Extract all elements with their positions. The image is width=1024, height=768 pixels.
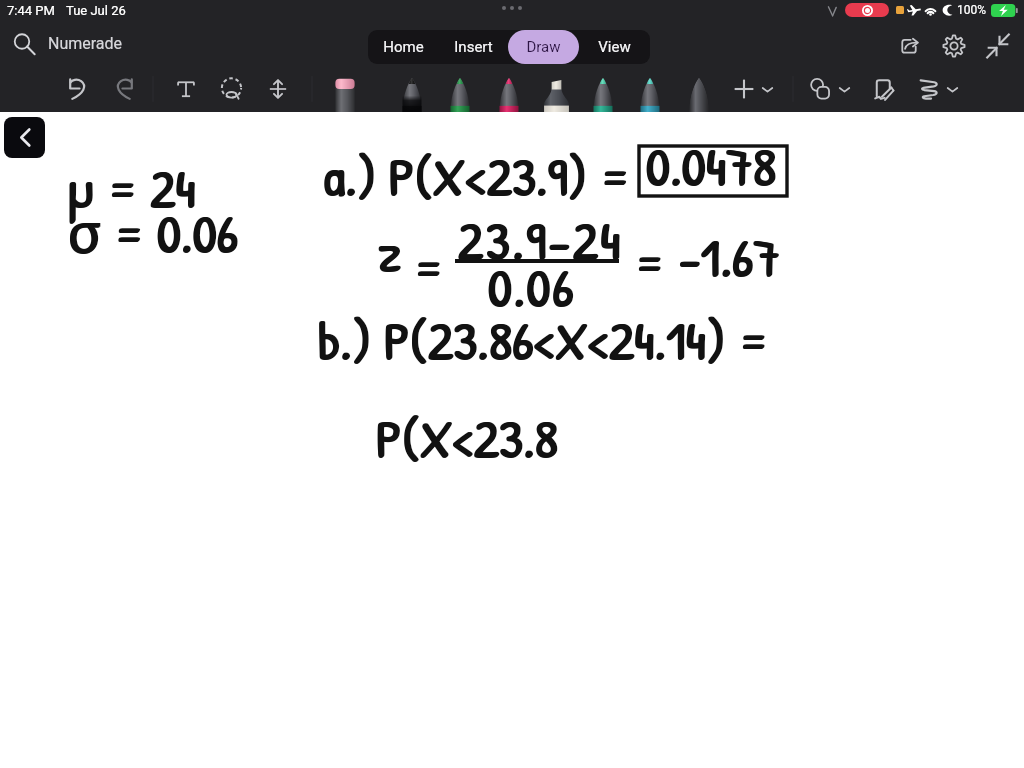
staticText: -1.67 [678, 220, 780, 293]
button[interactable]: Search [11, 31, 36, 56]
staticText: σ = 0.06 [67, 195, 238, 270]
button[interactable]: Tool [686, 78, 712, 112]
button[interactable]: Share [895, 32, 923, 60]
staticText: 23.9-24 [458, 203, 623, 276]
button[interactable]: Tool [447, 78, 473, 112]
staticText: σ = 0.06 [67, 194, 238, 269]
staticText: a.) P(X<23.9) = [324, 139, 631, 212]
staticText: 0.0478 [646, 129, 777, 202]
staticText: View [598, 38, 631, 56]
staticText: 0.0478 [647, 129, 778, 202]
staticText: b.) P(23.86<X<24.14) = [319, 303, 770, 376]
staticText: 23.9-24 [458, 204, 623, 277]
staticText: Tue Jul 26 [66, 3, 126, 18]
button[interactable]: Tool [399, 78, 425, 112]
staticText: σ = 0.06 [68, 194, 239, 269]
staticText: P(X<23.8 [375, 401, 558, 474]
staticText: a.) P(X<23.9) = [323, 139, 630, 212]
staticText: 23.9-24 [457, 204, 622, 277]
staticText: μ = 24 [69, 151, 197, 224]
staticText: 23.9-24 [459, 203, 624, 276]
button[interactable]: Lasso select [219, 76, 245, 102]
staticText: -1.67 [678, 221, 780, 294]
staticText: P(X<23.8 [376, 402, 559, 475]
staticText: 0.0478 [646, 130, 777, 203]
button[interactable]: Insert [438, 30, 508, 64]
staticText: z [378, 216, 402, 289]
staticText: = [414, 230, 445, 303]
staticText: a.) P(X<23.9) = [324, 140, 631, 213]
button[interactable]: Collapse [983, 31, 1013, 61]
staticText: Insert [454, 38, 493, 56]
staticText: 0.0478 [645, 130, 776, 203]
staticText: 7:44 PM [7, 3, 55, 18]
staticText: = [635, 225, 666, 298]
staticText: μ = 24 [68, 152, 196, 225]
staticText: 0.06 [487, 251, 575, 324]
button[interactable]: Tool [543, 80, 570, 112]
button[interactable]: Undo [65, 76, 91, 102]
button[interactable]: Add tool [731, 76, 757, 102]
staticText: μ = 24 [67, 151, 195, 224]
button[interactable]: Shape options [837, 82, 852, 97]
button[interactable]: Ink options [945, 82, 960, 97]
button[interactable]: Draw [508, 30, 579, 64]
staticText: 0.06 [488, 251, 576, 324]
staticText: z [377, 216, 401, 289]
staticText: Home [383, 38, 424, 56]
staticText: = [412, 230, 443, 303]
staticText: 100% [957, 3, 987, 17]
staticText: μ = 24 [67, 152, 195, 225]
staticText: b.) P(23.86<X<24.14) = [318, 304, 769, 377]
staticText: b.) P(23.86<X<24.14) = [318, 303, 769, 376]
staticText: P(X<23.8 [375, 402, 558, 475]
staticText: z [379, 215, 403, 288]
staticText: a.) P(X<23.9) = [323, 140, 630, 213]
button[interactable]: Home [368, 30, 438, 64]
button[interactable]: Settings [940, 32, 968, 60]
button[interactable]: Redo [111, 76, 137, 102]
staticText: σ = 0.06 [69, 194, 240, 269]
staticText: = [633, 225, 664, 298]
staticText: 0.06 [488, 250, 576, 323]
staticText: = [633, 226, 664, 299]
button[interactable]: More tools [760, 82, 775, 97]
staticText: Numerade [48, 34, 123, 53]
staticText: -1.67 [679, 221, 781, 294]
staticText: = [634, 225, 665, 298]
button[interactable]: Tool [637, 78, 663, 112]
button[interactable]: Tool [496, 78, 522, 112]
staticText: 0.0478 [645, 129, 776, 202]
button[interactable]: Text [174, 77, 198, 101]
staticText: a.) P(X<23.9) = [325, 139, 632, 212]
button[interactable]: Shapes [808, 76, 834, 102]
staticText: b.) P(23.86<X<24.14) = [317, 303, 768, 376]
staticText: -1.67 [679, 220, 781, 293]
staticText: 0.06 [489, 250, 577, 323]
button[interactable]: View [579, 30, 650, 64]
staticText: b.) P(23.86<X<24.14) = [317, 304, 768, 377]
staticText: P(X<23.8 [376, 401, 559, 474]
staticText: -1.67 [680, 220, 782, 293]
button[interactable]: Tool [332, 78, 358, 112]
staticText: z [377, 215, 401, 288]
button[interactable]: Tool [590, 78, 616, 112]
staticText: = [634, 226, 665, 299]
button[interactable]: Ink styles [916, 76, 942, 102]
button[interactable]: Back [4, 117, 45, 158]
staticText: = [412, 231, 443, 304]
staticText: = [413, 230, 444, 303]
staticText: Draw [526, 38, 561, 56]
staticText: z [378, 215, 402, 288]
button[interactable]: Sticky note [870, 76, 896, 102]
staticText: 0.06 [487, 250, 575, 323]
button[interactable]: Insert space [266, 77, 290, 101]
staticText: μ = 24 [68, 151, 196, 224]
staticText: P(X<23.8 [377, 401, 560, 474]
staticText: = [413, 231, 444, 304]
staticText: 23.9-24 [457, 203, 622, 276]
staticText: σ = 0.06 [68, 195, 239, 270]
